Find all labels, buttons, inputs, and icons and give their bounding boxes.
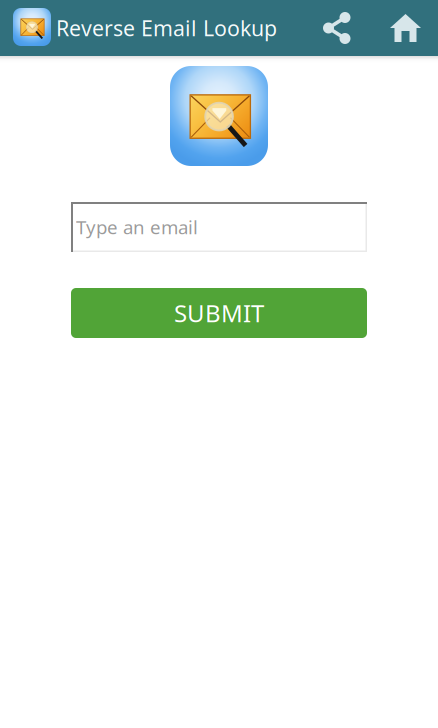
button[interactable]: Type an email (71, 202, 367, 252)
button[interactable]: SUBMIT (71, 288, 367, 338)
button[interactable]: Home (373, 0, 438, 56)
staticText: SUBMIT (174, 297, 264, 329)
staticText: Type an email (76, 215, 198, 239)
staticText: Reverse Email Lookup (56, 14, 277, 42)
button[interactable]: Share (301, 0, 373, 56)
